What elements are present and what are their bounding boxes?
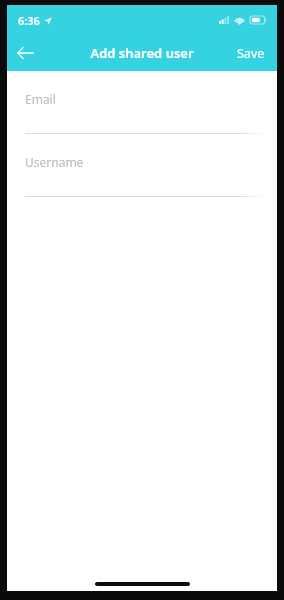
staticText: Save (237, 45, 265, 62)
staticText: Add shared user (7, 44, 277, 62)
button[interactable]: Username (7, 154, 277, 197)
button[interactable]: Save (225, 35, 277, 71)
staticText: 6:36 (18, 13, 40, 28)
button[interactable]: Email (7, 91, 277, 134)
staticText: Email (25, 91, 56, 107)
button[interactable]: Back (7, 35, 43, 71)
staticText: Username (25, 154, 84, 170)
